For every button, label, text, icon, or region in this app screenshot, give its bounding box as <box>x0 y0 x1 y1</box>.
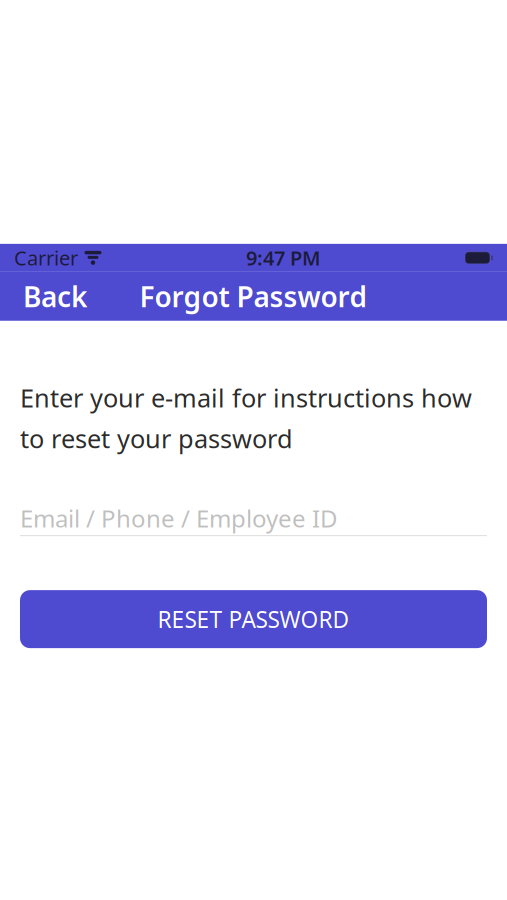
staticText: Email / Phone / Employee ID <box>20 502 338 534</box>
staticText: 9:47 PM <box>246 245 321 271</box>
staticText: RESET PASSWORD <box>157 604 349 634</box>
button[interactable]: Back <box>13 270 97 323</box>
button[interactable]: RESET PASSWORD <box>20 590 487 648</box>
staticText: Back <box>23 278 87 315</box>
button[interactable]: Email / Phone / Employee ID <box>20 501 487 535</box>
staticText: Carrier <box>14 245 78 271</box>
staticText: Enter your e-mail for instructions how t… <box>20 381 472 455</box>
staticText: Forgot Password <box>139 278 367 315</box>
